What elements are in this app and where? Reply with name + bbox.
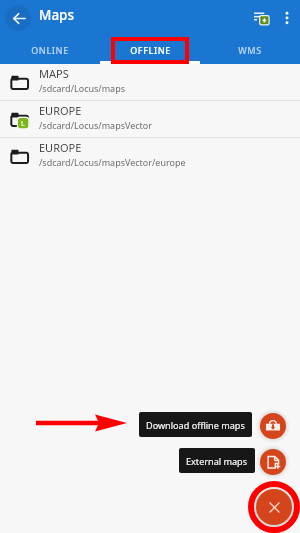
button[interactable]: Back: [5, 5, 31, 31]
button[interactable]: L: [0, 101, 300, 137]
button[interactable]: Map items: [246, 2, 274, 30]
button[interactable]: WMS: [200, 33, 300, 64]
button[interactable]: ONLINE: [0, 33, 100, 64]
staticText: Download offline maps: [146, 419, 245, 431]
staticText: MAPS: [39, 66, 69, 81]
staticText: EUROPE: [39, 140, 82, 155]
button[interactable]: External maps: [260, 449, 286, 475]
staticText: /sdcard/Locus/mapsVector/europe: [39, 156, 186, 168]
staticText: ONLINE: [31, 44, 69, 56]
button[interactable]: OFFLINE: [100, 33, 200, 64]
staticText: Maps: [39, 6, 75, 24]
staticText: WMS: [238, 44, 262, 56]
button[interactable]: External maps: [179, 448, 255, 473]
staticText: /sdcard/Locus/mapsVector: [39, 119, 153, 131]
staticText: EUROPE: [39, 103, 82, 118]
button[interactable]: EUROPE: [0, 138, 300, 174]
staticText: OFFLINE: [130, 44, 171, 56]
button[interactable]: Close actions: [256, 489, 292, 525]
button[interactable]: MAPS: [0, 64, 300, 100]
staticText: External maps: [186, 455, 248, 467]
button[interactable]: Download offline maps: [260, 413, 286, 439]
staticText: /sdcard/Locus/maps: [39, 82, 125, 94]
button[interactable]: More options: [274, 3, 300, 29]
staticText: L: [21, 119, 25, 129]
button[interactable]: Download offline maps: [139, 412, 252, 437]
